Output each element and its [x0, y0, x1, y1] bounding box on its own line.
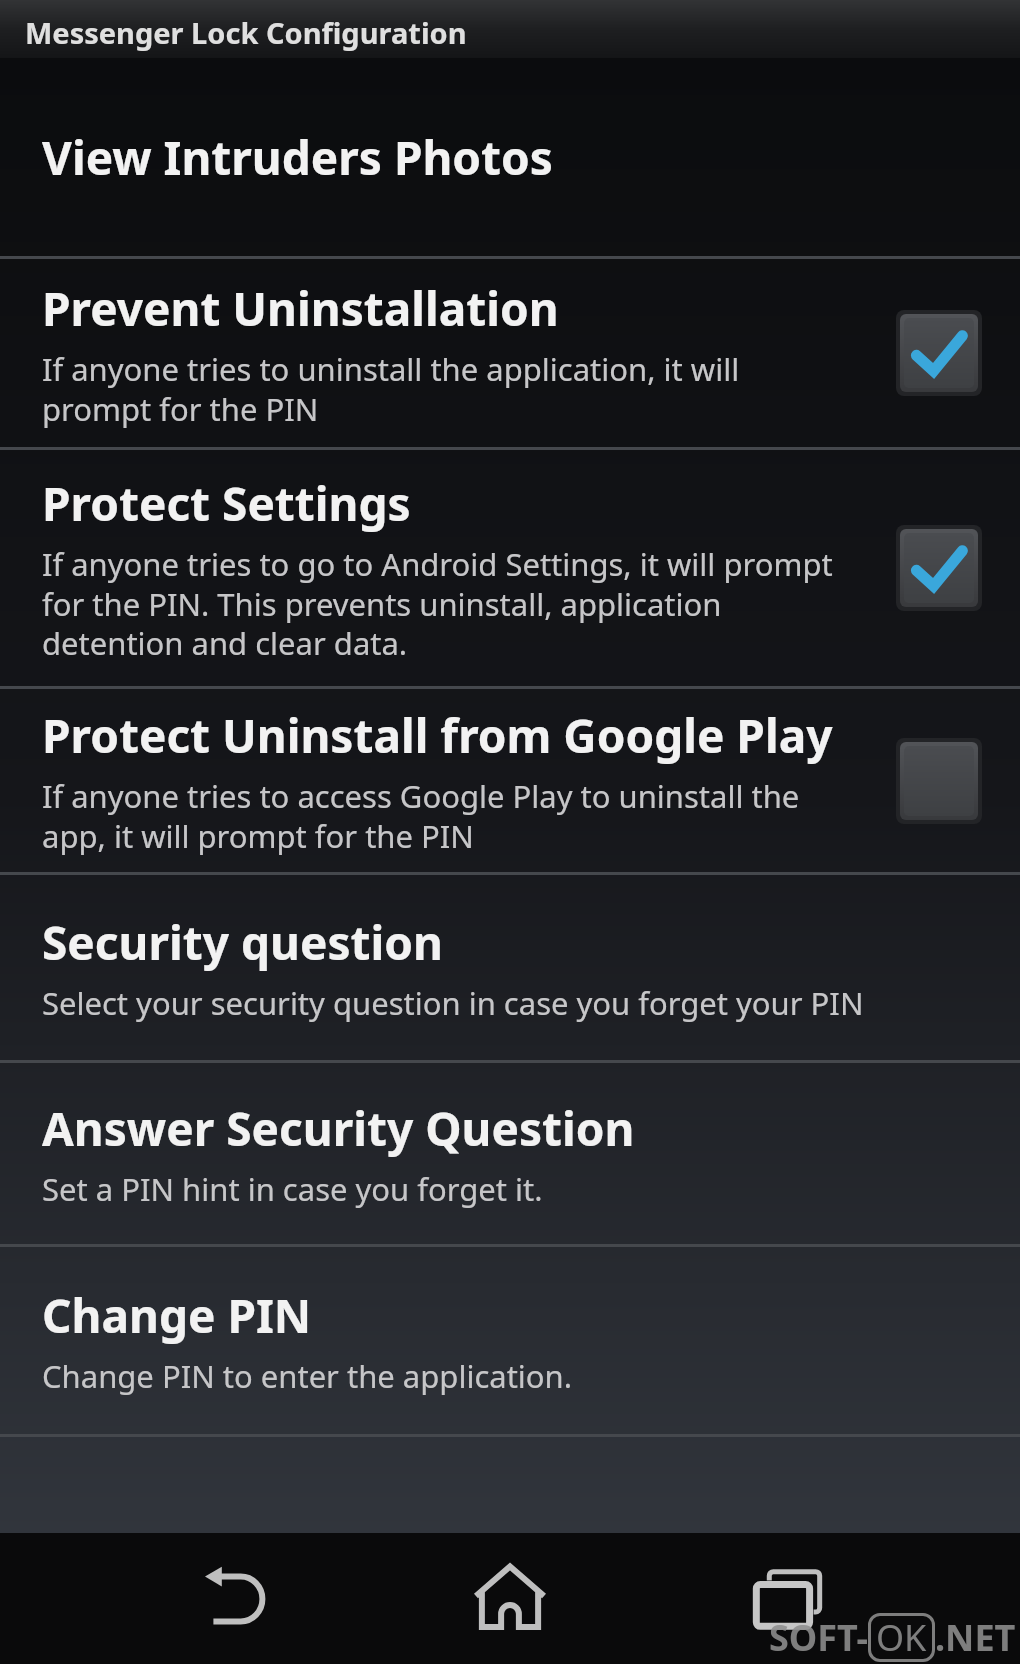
staticText: Security question: [42, 911, 443, 974]
staticText: If anyone tries to go to Android Setting…: [42, 543, 833, 664]
staticText: Messenger Lock Configuration: [25, 13, 467, 52]
button[interactable]: Prevent Uninstallation: [0, 259, 1020, 447]
staticText: OK: [876, 1613, 927, 1662]
button[interactable]: Answer Security Question: [0, 1063, 1020, 1244]
staticText: Prevent Uninstallation: [42, 277, 559, 340]
staticText: SOFT-: [769, 1613, 868, 1662]
staticText: Protect Settings: [42, 472, 411, 535]
staticText: .NET: [935, 1613, 1016, 1662]
staticText: If anyone tries to uninstall the applica…: [42, 348, 740, 430]
staticText: View Intruders Photos: [42, 126, 553, 189]
button[interactable]: Change PIN: [0, 1247, 1020, 1434]
button[interactable]: [465, 1554, 555, 1644]
button[interactable]: View Intruders Photos: [0, 58, 1020, 256]
staticText: Set a PIN hint in case you forget it.: [42, 1168, 543, 1210]
staticText: Change PIN to enter the application.: [42, 1355, 573, 1397]
button[interactable]: Security question: [0, 875, 1020, 1060]
button[interactable]: Protect Uninstall from Google Play: [0, 689, 1020, 872]
staticText: If anyone tries to access Google Play to…: [42, 775, 800, 857]
staticText: Select your security question in case yo…: [42, 982, 864, 1024]
button[interactable]: Protect Settings: [0, 450, 1020, 686]
staticText: Answer Security Question: [42, 1097, 635, 1160]
staticText: Change PIN: [42, 1284, 312, 1347]
button[interactable]: [743, 1554, 833, 1644]
staticText: Protect Uninstall from Google Play: [42, 704, 833, 767]
button[interactable]: [188, 1554, 278, 1644]
